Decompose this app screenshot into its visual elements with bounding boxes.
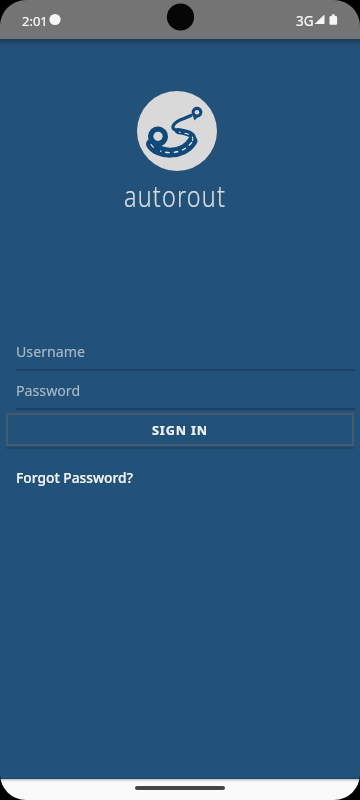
button[interactable]: Forgot Password?	[16, 468, 133, 487]
button[interactable]: Password	[8, 377, 352, 410]
staticText: 2:01	[22, 12, 48, 30]
staticText: Forgot Password?	[16, 468, 133, 487]
staticText: 3G	[296, 12, 314, 30]
staticText: SIGN IN	[152, 421, 209, 438]
staticText: Password	[16, 381, 81, 400]
button[interactable]: SIGN IN	[6, 413, 354, 446]
staticText: Username	[16, 342, 86, 361]
button[interactable]: Username	[8, 338, 352, 371]
staticText: autorout	[35, 175, 315, 216]
